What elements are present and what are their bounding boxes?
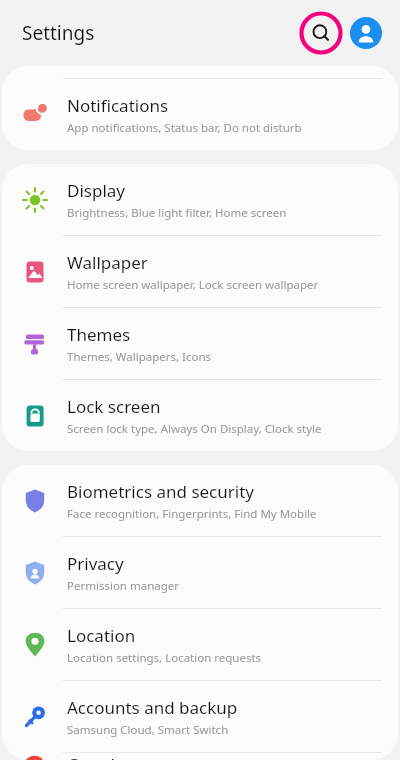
- button[interactable]: Lock screen: [2, 380, 398, 451]
- button[interactable]: Themes: [2, 308, 398, 379]
- staticText: App notifications, Status bar, Do not di…: [67, 120, 302, 136]
- button[interactable]: Display: [2, 164, 398, 235]
- staticText: Brightness, Blue light filter, Home scre…: [67, 205, 287, 221]
- staticText: Location settings, Location requests: [67, 650, 262, 666]
- button[interactable]: Search: [298, 10, 344, 56]
- button[interactable]: Account: [346, 13, 386, 53]
- staticText: Display: [67, 179, 125, 202]
- staticText: Google: [67, 753, 125, 760]
- staticText: Samsung Cloud, Smart Switch: [67, 722, 229, 738]
- staticText: Screen lock type, Always On Display, Clo…: [67, 421, 322, 437]
- staticText: Themes: [67, 323, 131, 346]
- button[interactable]: Biometrics and security: [2, 465, 398, 536]
- button[interactable]: Privacy: [2, 537, 398, 608]
- button[interactable]: Location: [2, 609, 398, 680]
- staticText: Biometrics and security: [67, 480, 254, 503]
- staticText: Location: [67, 624, 136, 647]
- staticText: Permission manager: [67, 578, 180, 594]
- button[interactable]: Google: [2, 753, 398, 760]
- button[interactable]: Wallpaper: [2, 236, 398, 307]
- button[interactable]: Accounts and backup: [2, 681, 398, 752]
- staticText: Privacy: [67, 552, 124, 575]
- staticText: Face recognition, Fingerprints, Find My …: [67, 506, 317, 522]
- button[interactable]: Notifications: [2, 79, 398, 150]
- staticText: Lock screen: [67, 395, 161, 418]
- staticText: Notifications: [67, 94, 169, 117]
- staticText: Themes, Wallpapers, Icons: [67, 349, 212, 365]
- staticText: Settings: [22, 20, 95, 46]
- staticText: Accounts and backup: [67, 696, 238, 719]
- staticText: Home screen wallpaper, Lock screen wallp…: [67, 277, 319, 293]
- staticText: Wallpaper: [67, 251, 148, 274]
